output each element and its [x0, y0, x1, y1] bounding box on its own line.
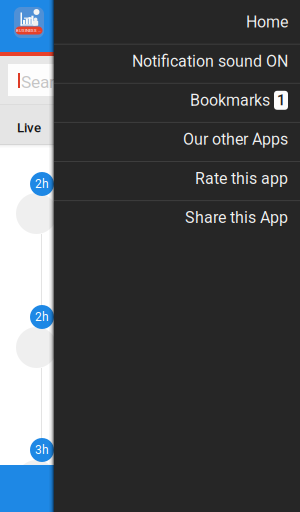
staticText: 1: [277, 92, 285, 109]
staticText: Searc: [21, 72, 64, 92]
staticText: BUSINESS CHANNEL: [16, 28, 42, 33]
staticText: Our other Apps: [183, 130, 288, 149]
button[interactable]: Bookmarks: [54, 83, 300, 122]
staticText: 3h: [35, 443, 49, 457]
button[interactable]: Share this App: [54, 200, 300, 239]
staticText: Share this App: [185, 208, 288, 227]
staticText: Home: [246, 13, 288, 31]
button[interactable]: Our other Apps: [54, 122, 300, 161]
staticText: Bookmarks: [190, 91, 270, 110]
button[interactable]: Home: [54, 5, 300, 44]
staticText: Live: [17, 120, 41, 136]
staticText: 2h: [35, 177, 49, 191]
staticText: Rate this app: [195, 169, 288, 188]
staticText: 2h: [35, 310, 49, 324]
button[interactable]: Rate this app: [54, 161, 300, 200]
staticText: Notification sound ON: [132, 52, 288, 71]
button[interactable]: Notification sound ON: [54, 44, 300, 83]
